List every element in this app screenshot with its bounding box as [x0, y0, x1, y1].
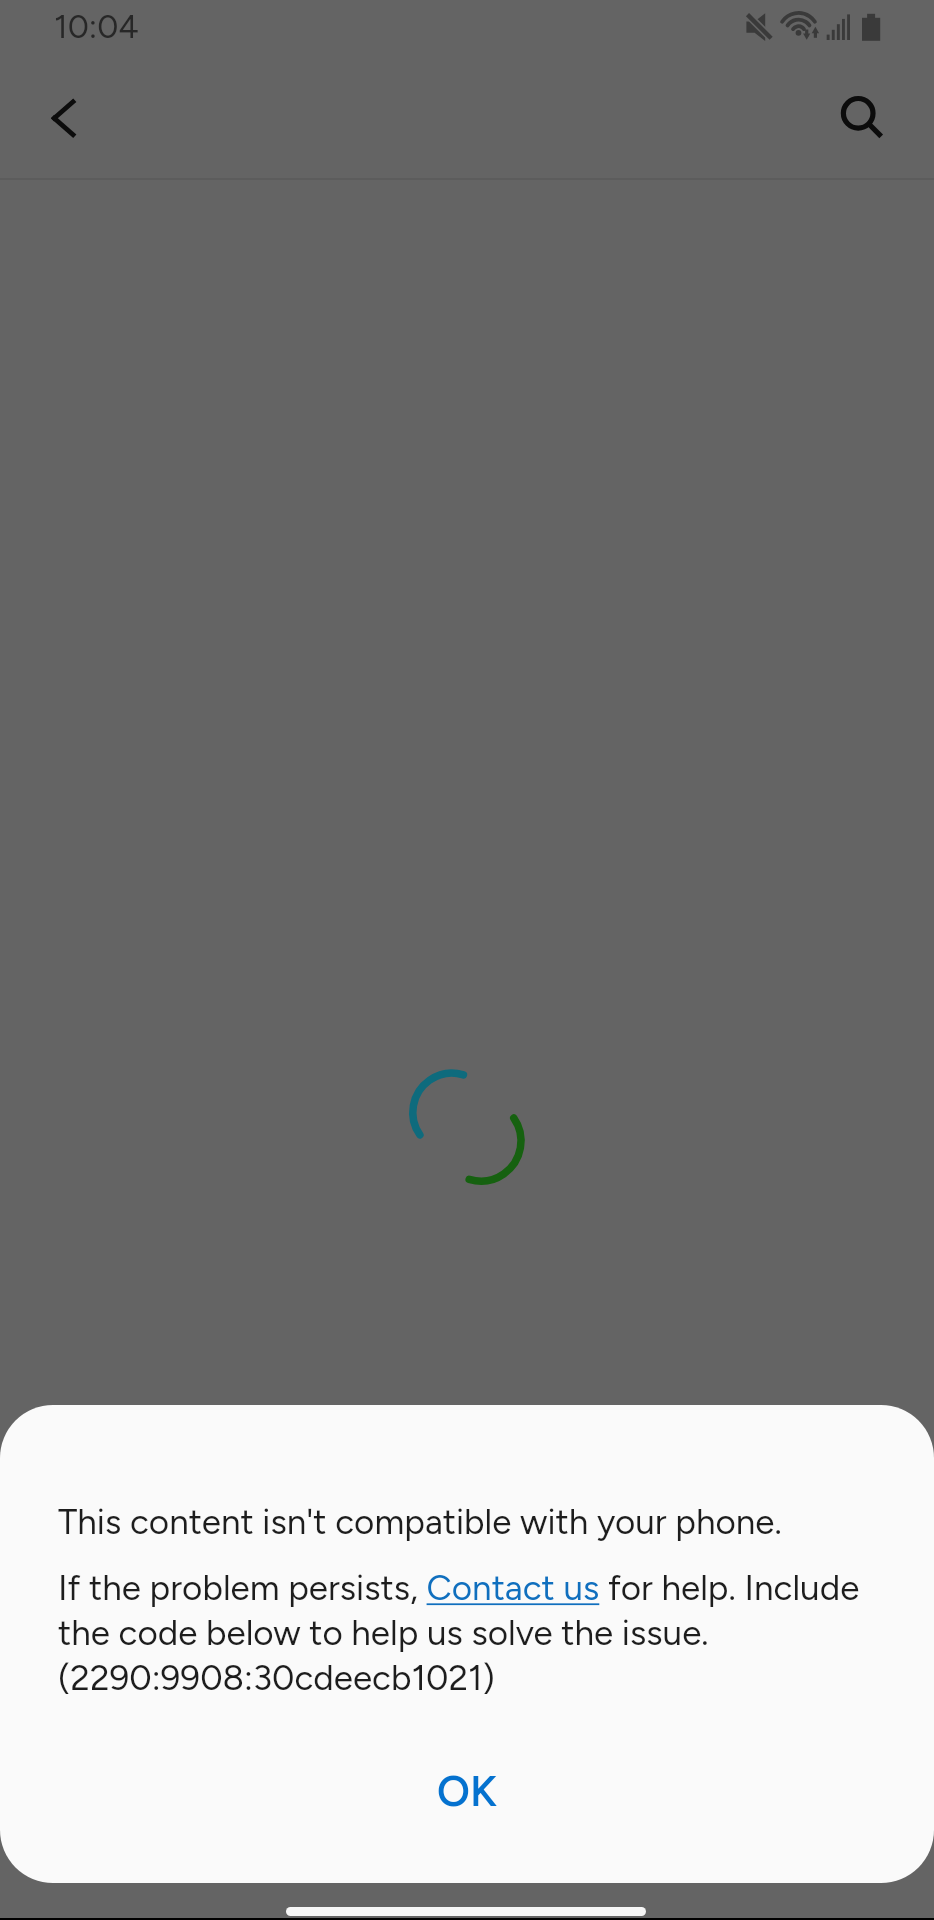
- staticText: This content isn't compatible with your …: [58, 1501, 782, 1543]
- staticText: 10:04: [54, 7, 139, 47]
- staticText: OK: [437, 1766, 497, 1816]
- staticText: If the problem persists, Contact us for …: [58, 1567, 904, 1699]
- button[interactable]: Back: [15, 70, 111, 166]
- button[interactable]: OK: [391, 1752, 543, 1830]
- button[interactable]: Search: [810, 70, 906, 166]
